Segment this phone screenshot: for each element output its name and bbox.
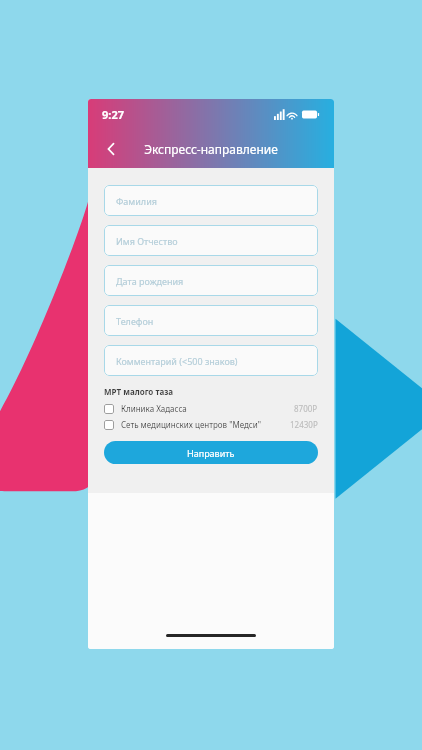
button[interactable]: Комментарий (<500 знаков) <box>104 345 318 376</box>
staticText: Направить <box>187 447 235 459</box>
staticText: 9:27 <box>102 107 124 122</box>
staticText: МРТ малого таза <box>104 386 174 397</box>
button[interactable]: Сеть медицинских центров "Медси" <box>104 419 318 430</box>
button[interactable]: Клиника Хадасса <box>104 403 318 414</box>
button[interactable]: Фамилия <box>104 185 318 216</box>
button[interactable]: Телефон <box>104 305 318 336</box>
button[interactable]: Back <box>94 132 128 166</box>
staticText: Фамилия <box>116 195 157 207</box>
staticText: 8700Р <box>294 403 318 414</box>
staticText: Экспресс-направление <box>144 141 278 157</box>
button[interactable]: Направить <box>104 441 318 464</box>
staticText: Имя Отчество <box>116 235 178 247</box>
staticText: 12430Р <box>290 419 318 430</box>
button[interactable]: Имя Отчество <box>104 225 318 256</box>
button[interactable]: Дата рождения <box>104 265 318 296</box>
staticText: Комментарий (<500 знаков) <box>116 355 238 367</box>
staticText: Сеть медицинских центров "Медси" <box>121 419 262 430</box>
staticText: Клиника Хадасса <box>121 403 187 414</box>
staticText: Дата рождения <box>116 275 184 287</box>
staticText: Телефон <box>116 315 154 327</box>
